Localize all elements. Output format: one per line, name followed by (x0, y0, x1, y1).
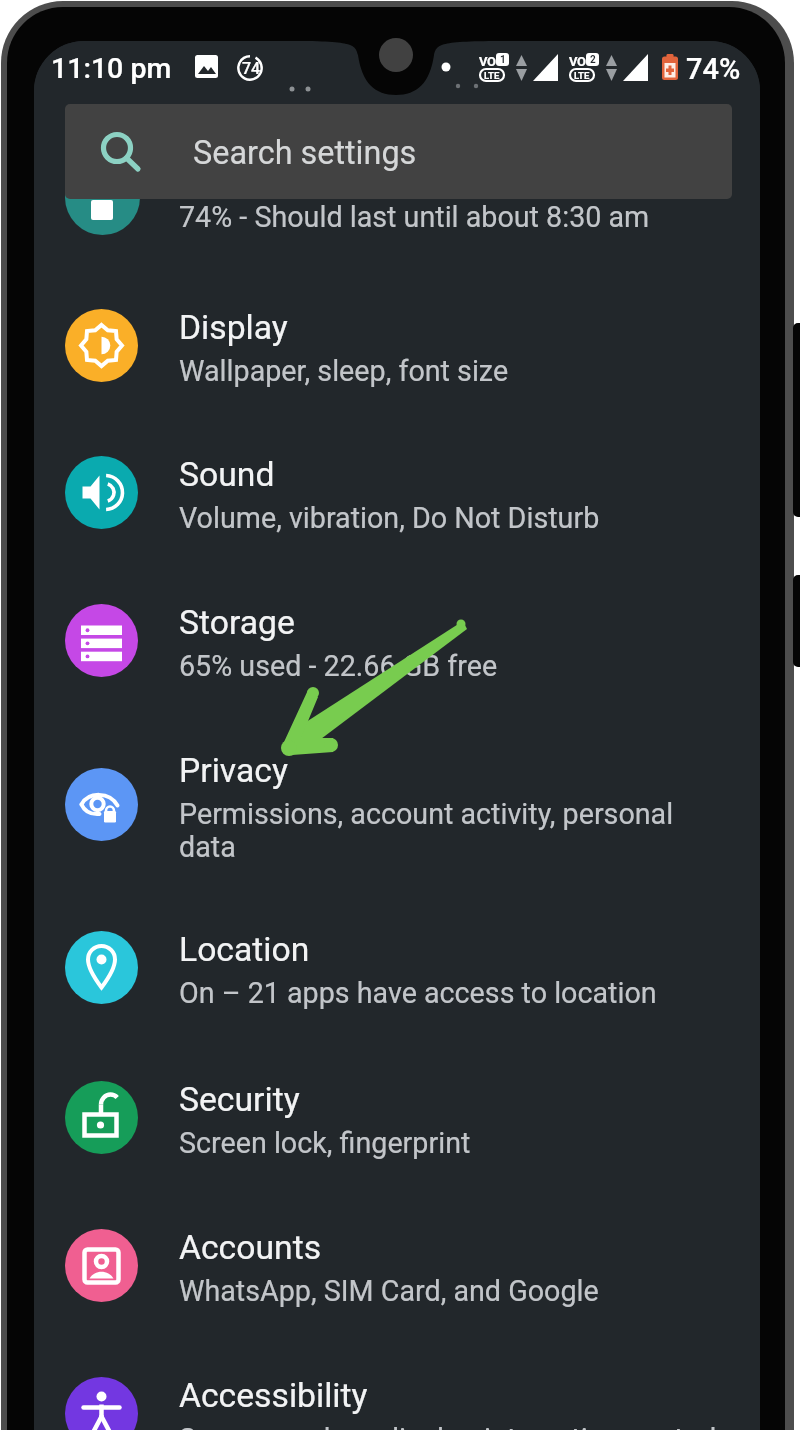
button[interactable]: Sound (34, 428, 760, 574)
staticText: 65% used - 22.66 GB free (179, 649, 739, 683)
staticText: VO (479, 54, 496, 69)
staticText: Security (179, 1080, 300, 1119)
staticText: Accounts (179, 1228, 322, 1267)
button[interactable]: Search (65, 104, 732, 199)
staticText: 11:10 pm (51, 52, 172, 85)
staticText: Screen readers, display, interaction con… (179, 1422, 739, 1430)
staticText: Sound (179, 455, 275, 494)
staticText: Permissions, account activity, personal … (179, 797, 684, 864)
button[interactable]: Location (34, 903, 760, 1049)
staticText: 74% (686, 52, 741, 86)
staticText: LTE (484, 70, 500, 81)
button[interactable]: Accounts (34, 1201, 760, 1347)
staticText: VO (569, 54, 586, 69)
staticText: Search settings (193, 134, 417, 172)
other: Search (101, 133, 141, 173)
staticText: Location (179, 930, 310, 969)
staticText: Privacy (179, 751, 288, 790)
staticText: Accessibility (179, 1376, 368, 1415)
button[interactable]: Display (34, 281, 760, 427)
staticText: 74% - Should last until about 8:30 am (179, 200, 650, 234)
button[interactable]: Storage (34, 576, 760, 722)
button[interactable]: Security (34, 1053, 760, 1199)
staticText: 1 (500, 54, 506, 66)
staticText: Display (179, 308, 288, 347)
button[interactable]: Privacy (34, 724, 760, 870)
staticText: WhatsApp, SIM Card, and Google (179, 1274, 739, 1308)
staticText: Storage (179, 603, 295, 642)
staticText: On – 21 apps have access to location (179, 976, 739, 1010)
button[interactable]: Accessibility (34, 1349, 760, 1430)
staticText: Screen lock, fingerprint (179, 1126, 739, 1160)
staticText: LTE (574, 70, 590, 81)
staticText: 2 (590, 54, 596, 66)
staticText: Volume, vibration, Do Not Disturb (179, 501, 739, 535)
staticText: Wallpaper, sleep, font size (179, 354, 739, 388)
staticText: 74 (242, 59, 261, 78)
